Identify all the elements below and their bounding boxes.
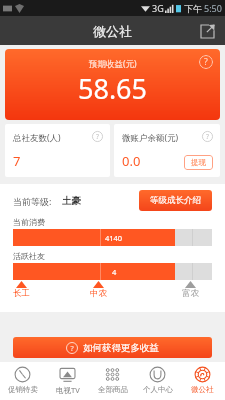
staticText: ? bbox=[206, 132, 209, 141]
button[interactable]: 微账户余额(元) bbox=[114, 124, 220, 177]
button[interactable]: 电视TV bbox=[45, 362, 90, 400]
staticText: 土豪 bbox=[62, 195, 81, 207]
staticText: 7 bbox=[13, 152, 21, 170]
button[interactable]: 总社友数(人) bbox=[5, 124, 110, 177]
staticText: 微公社 bbox=[93, 23, 132, 39]
button[interactable]: 提现 bbox=[184, 155, 213, 170]
button[interactable]: Share bbox=[195, 19, 219, 43]
staticText: 当前等级: bbox=[13, 195, 52, 207]
staticText: 58.65 bbox=[78, 70, 148, 107]
staticText: 个人中心 bbox=[143, 385, 173, 394]
staticText: 等级成长介绍 bbox=[150, 195, 201, 206]
button[interactable]: 个人中心 bbox=[135, 362, 180, 400]
staticText: 如何获得更多收益 bbox=[83, 342, 159, 354]
staticText: 全部商品 bbox=[98, 385, 128, 394]
button[interactable]: 预期收益(元) bbox=[5, 49, 220, 120]
staticText: 当前消费 bbox=[13, 217, 45, 227]
staticText: 4140 bbox=[105, 233, 123, 243]
staticText: 下午 bbox=[184, 3, 202, 14]
staticText: 预期收益(元) bbox=[89, 58, 137, 70]
staticText: 4 bbox=[112, 267, 117, 277]
staticText: 0.0 bbox=[122, 152, 141, 170]
button[interactable]: 促销特卖 bbox=[0, 362, 45, 400]
button[interactable]: 帮助 bbox=[199, 55, 213, 69]
staticText: 富农 bbox=[182, 288, 199, 299]
staticText: 电视TV bbox=[56, 385, 80, 395]
staticText: 长工 bbox=[13, 288, 30, 299]
staticText: 总社友数(人) bbox=[13, 132, 61, 144]
staticText: 3G bbox=[152, 2, 164, 14]
staticText: 活跃社友 bbox=[13, 251, 45, 261]
staticText: ? bbox=[204, 56, 208, 68]
button[interactable]: 微公社 bbox=[180, 362, 225, 400]
staticText: 促销特卖 bbox=[8, 385, 38, 394]
staticText: ? bbox=[96, 132, 99, 141]
button[interactable]: 等级成长介绍 bbox=[139, 190, 212, 211]
staticText: 5:50 bbox=[204, 2, 222, 14]
staticText: 提现 bbox=[191, 158, 206, 167]
staticText: ? bbox=[70, 343, 74, 353]
staticText: 中农 bbox=[90, 288, 107, 299]
staticText: 微账户余额(元) bbox=[122, 132, 179, 144]
button[interactable]: 全部商品 bbox=[90, 362, 135, 400]
staticText: 微公社 bbox=[191, 385, 214, 394]
button[interactable]: ? bbox=[13, 337, 212, 358]
